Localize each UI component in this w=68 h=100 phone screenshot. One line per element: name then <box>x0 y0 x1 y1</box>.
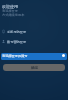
other: Close <box>62 54 65 57</box>
staticText: 请选择登录的账号 <box>2 54 28 58</box>
staticText: 欢迎使用 <box>2 4 18 9</box>
staticText: 确定 <box>31 66 39 71</box>
staticText: 手机号码登录 <box>7 30 27 34</box>
button[interactable]: 账号密码登录 <box>0 38 68 45</box>
button[interactable]: 手机号码登录 <box>0 28 68 35</box>
staticText: 账号密码登录 <box>7 40 27 44</box>
staticText: 请选择登录 <box>2 9 18 13</box>
button[interactable]: 确定 <box>3 64 65 71</box>
button[interactable]: 请选择登录的账号 <box>1 53 67 60</box>
staticText: 方式继续使用本 <box>2 13 25 17</box>
